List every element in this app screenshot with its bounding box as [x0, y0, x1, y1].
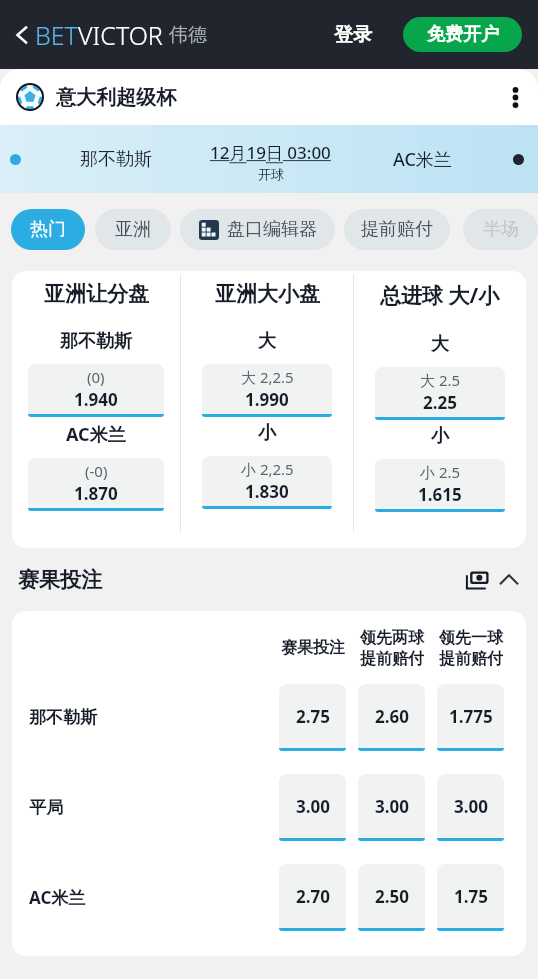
button[interactable]: 小 2.5 [375, 459, 505, 512]
button[interactable]: 热门 [11, 209, 85, 250]
staticText: 1.870 [74, 482, 118, 505]
staticText: (0) [87, 367, 105, 387]
staticText: 2.70 [296, 885, 330, 908]
button[interactable]: 提前赔付 [344, 209, 450, 250]
staticText: 1.940 [74, 388, 118, 411]
staticText: 1.830 [245, 480, 289, 503]
staticText: 登录 [334, 23, 372, 47]
button[interactable]: More options [498, 80, 532, 114]
staticText: 2.60 [375, 705, 409, 728]
staticText: 亚洲 [115, 218, 151, 241]
staticText: 大 [258, 330, 276, 353]
button[interactable]: 2.50 [358, 864, 425, 931]
staticText: 总进球 大/小 [380, 281, 500, 310]
staticText: 3.00 [296, 795, 330, 818]
button[interactable]: 1.75 [437, 864, 504, 931]
staticText: 1.990 [245, 388, 289, 411]
button[interactable]: 3.00 [279, 774, 346, 841]
staticText: 赛果投注 [18, 567, 102, 593]
button[interactable]: 2.70 [279, 864, 346, 931]
staticText: 提前赔付 [439, 649, 503, 668]
staticText: 平局 [29, 797, 63, 818]
staticText: 半场 [483, 218, 519, 241]
staticText: 小 [431, 425, 449, 448]
staticText: BET [35, 18, 78, 52]
staticText: 大 2.5 [420, 370, 461, 390]
button[interactable]: 大 2.5 [375, 367, 505, 420]
staticText: 领先两球 [360, 628, 424, 648]
staticText: 亚洲让分盘 [44, 281, 149, 307]
staticText: AC米兰 [66, 422, 126, 447]
staticText: 盘口编辑器 [227, 218, 317, 241]
staticText: 1.775 [449, 705, 493, 728]
staticText: 2.75 [296, 705, 330, 728]
staticText: 那不勒斯 [80, 148, 152, 171]
staticText: 开球 [258, 166, 284, 182]
staticText: 1.75 [454, 885, 488, 908]
button[interactable]: 免费开户 [403, 17, 522, 52]
button[interactable]: 3.00 [437, 774, 504, 841]
staticText: 提前赔付 [360, 649, 424, 668]
staticText: 领先一球 [439, 628, 503, 648]
staticText: 1.615 [418, 483, 462, 506]
button[interactable]: 1.775 [437, 684, 504, 751]
button[interactable]: 亚洲 [95, 209, 171, 250]
button[interactable]: 大 2,2.5 [202, 364, 332, 417]
staticText: 那不勒斯 [29, 707, 97, 728]
staticText: 亚洲大小盘 [215, 281, 320, 307]
staticText: 3.00 [454, 795, 488, 818]
staticText: 3.00 [375, 795, 409, 818]
staticText: 小 2,2.5 [241, 459, 294, 479]
button[interactable]: Collapse [494, 565, 524, 595]
button[interactable]: 盘口编辑器 [180, 209, 335, 250]
staticText: 2.50 [375, 885, 409, 908]
staticText: 小 [258, 422, 276, 445]
button[interactable]: 小 2,2.5 [202, 456, 332, 509]
staticText: VICTOR [78, 18, 163, 52]
staticText: 小 2.5 [420, 462, 461, 482]
button[interactable]: 半场 [463, 209, 538, 250]
staticText: 那不勒斯 [60, 330, 132, 353]
staticText: 热门 [30, 218, 66, 241]
staticText: 意大利超级杯 [56, 85, 176, 110]
staticText: 免费开户 [427, 23, 499, 46]
button[interactable]: (0) [28, 364, 164, 417]
staticText: 伟德 [169, 23, 207, 47]
staticText: 提前赔付 [361, 218, 433, 241]
staticText: 12月19日 03:00 [210, 141, 331, 164]
button[interactable]: 2.75 [279, 684, 346, 751]
staticText: AC米兰 [29, 886, 86, 909]
button[interactable]: 登录 [328, 15, 378, 55]
staticText: 2.25 [423, 391, 457, 414]
staticText: 大 [431, 333, 449, 356]
staticText: 赛果投注 [281, 638, 345, 658]
button[interactable]: Back [7, 21, 35, 49]
staticText: (-0) [85, 461, 108, 481]
staticText: AC米兰 [393, 147, 452, 172]
button[interactable]: 3.00 [358, 774, 425, 841]
button[interactable]: Cash out [462, 565, 492, 595]
button[interactable]: (-0) [28, 458, 164, 511]
button[interactable]: 2.60 [358, 684, 425, 751]
staticText: 大 2,2.5 [241, 367, 294, 387]
